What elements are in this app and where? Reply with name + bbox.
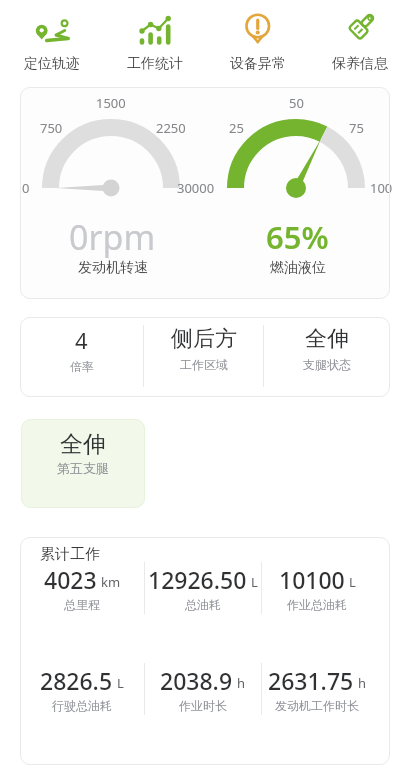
staticText: 2631.75: [268, 665, 354, 696]
staticText: 保养信息: [332, 55, 388, 73]
staticText: 作业总油耗: [287, 597, 347, 612]
staticText: 0rpm: [69, 214, 156, 260]
staticText: 发动机工作时长: [275, 698, 359, 713]
staticText: L: [349, 573, 356, 591]
staticText: 第五支腿: [57, 460, 109, 476]
staticText: 1500: [96, 94, 126, 112]
staticText: L: [117, 674, 124, 692]
staticText: 工作统计: [127, 55, 183, 73]
staticText: 0: [22, 179, 30, 197]
staticText: h: [358, 674, 367, 692]
staticText: 10100: [279, 564, 345, 595]
staticText: km: [101, 573, 121, 591]
staticText: 4023: [44, 564, 97, 595]
staticText: 行驶总油耗: [52, 698, 112, 713]
staticText: 总油耗: [185, 597, 221, 612]
button[interactable]: 设备异常: [206, 0, 309, 87]
button[interactable]: 保养信息: [309, 0, 410, 87]
staticText: 作业时长: [179, 698, 227, 713]
button[interactable]: 0: [20, 87, 390, 299]
staticText: 设备异常: [230, 55, 286, 73]
staticText: 发动机转速: [78, 259, 148, 277]
staticText: 支腿状态: [303, 357, 351, 372]
staticText: 12926.50: [148, 564, 247, 595]
button[interactable]: 全伸: [21, 419, 145, 508]
button[interactable]: 工作统计: [103, 0, 206, 87]
staticText: 75: [349, 119, 364, 137]
staticText: 100: [370, 179, 393, 197]
staticText: 30000: [177, 179, 215, 197]
button[interactable]: 4: [20, 317, 390, 397]
staticText: 全伸: [60, 430, 106, 459]
staticText: 25: [229, 119, 244, 137]
button[interactable]: 累计工作: [20, 537, 390, 765]
staticText: L: [251, 573, 258, 591]
staticText: 工作区域: [180, 357, 228, 372]
staticText: 2038.9: [160, 665, 233, 696]
button[interactable]: 定位轨迹: [0, 0, 103, 87]
staticText: 65%: [266, 216, 329, 258]
staticText: 定位轨迹: [24, 55, 80, 73]
staticText: 2250: [156, 119, 186, 137]
staticText: h: [237, 674, 246, 692]
staticText: 2826.5: [40, 665, 113, 696]
staticText: 全伸: [305, 325, 349, 353]
staticText: 倍率: [70, 359, 94, 374]
staticText: 50: [289, 94, 304, 112]
staticText: 总里程: [64, 597, 100, 612]
staticText: 4: [75, 325, 88, 355]
staticText: 750: [40, 119, 63, 137]
staticText: 燃油液位: [270, 259, 326, 277]
staticText: 累计工作: [40, 545, 100, 564]
staticText: 侧后方: [171, 325, 237, 353]
